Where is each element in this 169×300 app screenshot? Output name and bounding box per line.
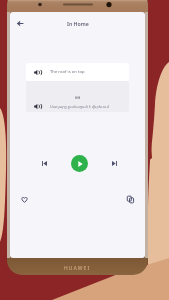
staticText: The roof is on top (50, 69, 85, 75)
button[interactable]: Favourite (18, 193, 31, 206)
button[interactable]: Play (71, 155, 88, 172)
button[interactable]: Previous (38, 157, 51, 170)
button[interactable]: Back (14, 17, 27, 30)
button[interactable]: Next (108, 157, 121, 170)
staticText: In Home (67, 20, 89, 27)
button[interactable]: The roof is on top (26, 63, 129, 81)
button[interactable]: Սաղարը քանացած է վերեւում (26, 81, 129, 112)
staticText: HUAWEI (64, 265, 91, 272)
staticText: Սաղարը քանացած է վերեւում (50, 104, 109, 109)
button[interactable]: Copy (124, 193, 137, 206)
